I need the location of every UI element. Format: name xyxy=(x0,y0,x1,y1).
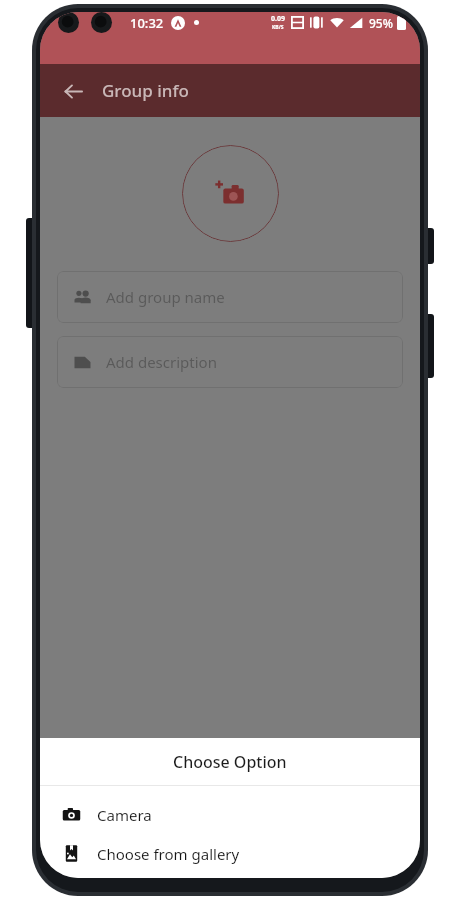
button[interactable]: Add group photo xyxy=(182,145,279,242)
staticText: 10:32 xyxy=(130,14,164,32)
button[interactable]: Add description xyxy=(57,336,403,388)
staticText: Group info xyxy=(102,79,189,102)
staticText: Choose from gallery xyxy=(97,844,240,864)
staticText: Add group name xyxy=(106,287,225,307)
staticText: Choose Option xyxy=(173,751,287,773)
button[interactable]: Camera xyxy=(40,798,420,831)
button[interactable]: Choose from gallery xyxy=(40,837,420,870)
button[interactable]: Back xyxy=(56,74,90,108)
staticText: Camera xyxy=(97,805,152,825)
staticText: Add description xyxy=(106,352,217,372)
button[interactable]: Add group name xyxy=(57,271,403,323)
staticText: 95% xyxy=(369,15,393,31)
staticText: KB/S xyxy=(272,24,284,31)
staticText: 0.09 xyxy=(271,14,285,24)
